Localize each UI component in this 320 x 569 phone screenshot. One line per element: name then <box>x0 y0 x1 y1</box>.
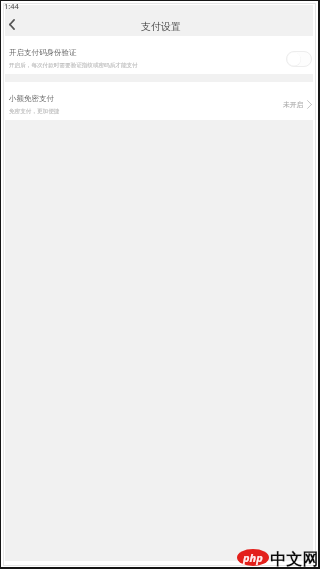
staticText: 小额免密支付 <box>9 94 54 103</box>
button[interactable]: 小额免密支付 <box>5 82 313 120</box>
staticText: 1:44 <box>4 1 19 11</box>
staticText: 中文网 <box>270 550 318 569</box>
staticText: php <box>243 550 263 565</box>
button[interactable]: 开启支付码身份验证 <box>5 36 313 74</box>
staticText: 支付设置 <box>141 20 181 33</box>
button[interactable]: Back <box>5 18 29 41</box>
staticText: 开启支付码身份验证 <box>9 48 77 57</box>
staticText: 免密支付，更加便捷 <box>9 108 60 115</box>
button[interactable]: Toggle payment code verification <box>286 51 312 67</box>
staticText: 未开启 <box>283 100 304 109</box>
staticText: 开启后，每次付款时需要验证指纹或密码后才能支付 <box>9 62 138 69</box>
